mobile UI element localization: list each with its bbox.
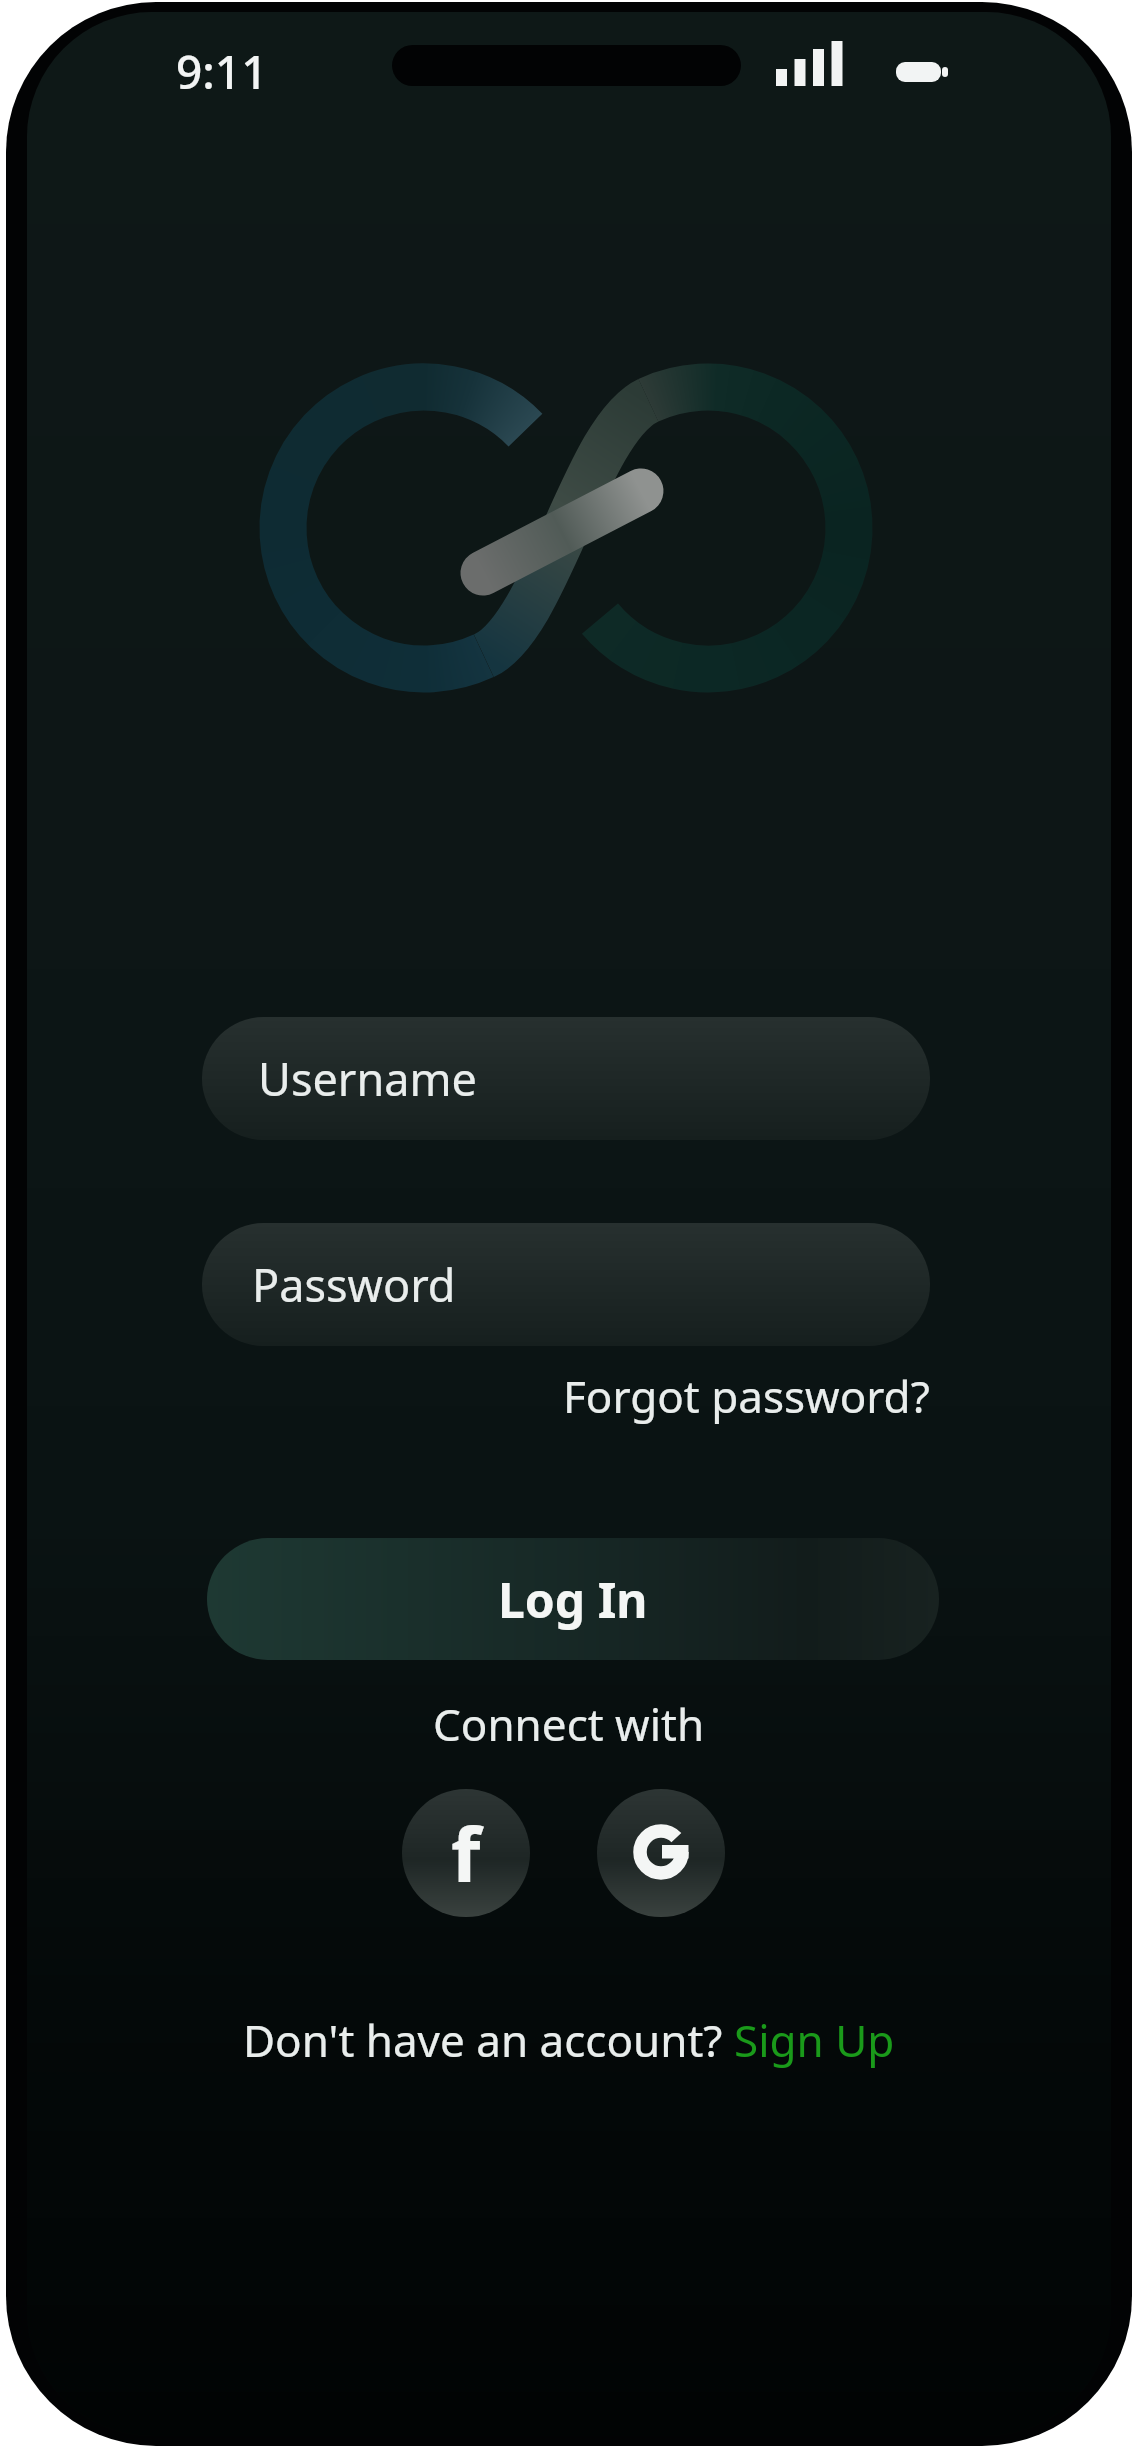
button[interactable] <box>597 1789 725 1917</box>
staticText: 9:11 <box>176 40 268 102</box>
button[interactable]: Log In <box>207 1538 939 1660</box>
staticText: Username <box>258 1048 477 1109</box>
staticText: Don't have an account? <box>243 2010 734 2070</box>
staticText: Connect with <box>433 1694 705 1754</box>
staticText: Forgot password? <box>563 1366 930 1426</box>
button[interactable]: Password <box>202 1223 930 1346</box>
staticText: f <box>451 1801 481 1905</box>
button[interactable]: Sign Up <box>734 2010 895 2070</box>
staticText: Sign Up <box>734 2010 895 2070</box>
staticText: Password <box>252 1254 456 1315</box>
button[interactable]: f <box>402 1789 530 1917</box>
button[interactable]: Forgot password? <box>563 1366 930 1426</box>
button[interactable]: Username <box>202 1017 930 1140</box>
staticText: Log In <box>498 1567 648 1632</box>
